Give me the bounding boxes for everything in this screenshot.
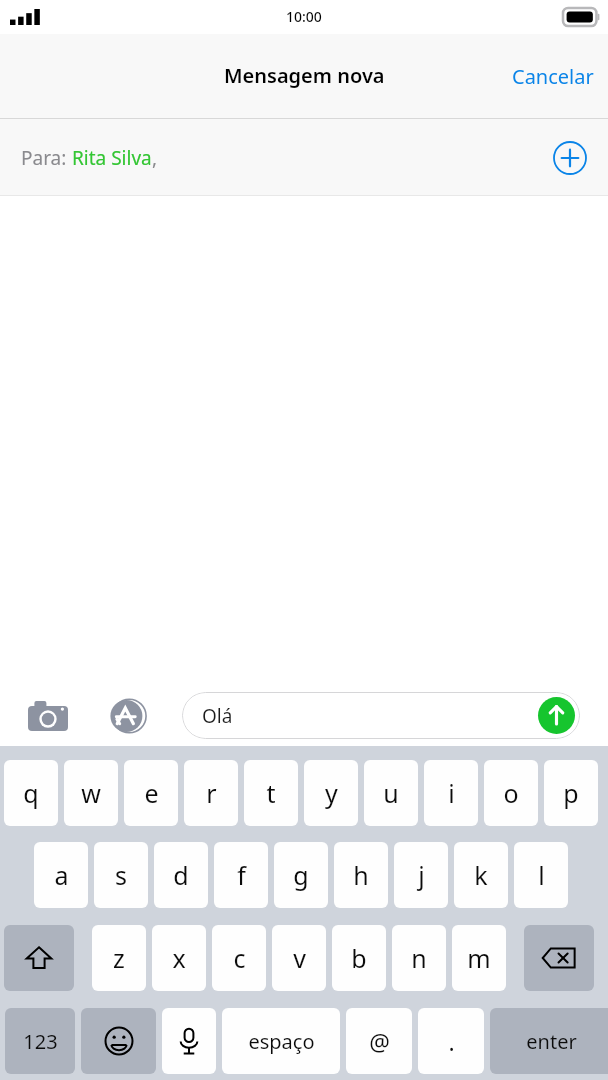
- button[interactable]: j: [394, 842, 448, 908]
- button[interactable]: f: [214, 842, 268, 908]
- staticText: j: [418, 858, 425, 892]
- button[interactable]: x: [152, 925, 206, 991]
- button[interactable]: d: [154, 842, 208, 908]
- button[interactable]: c: [212, 925, 266, 991]
- staticText: i: [448, 776, 455, 810]
- staticText: u: [383, 776, 399, 810]
- button[interactable]: g: [274, 842, 328, 908]
- staticText: b: [351, 941, 367, 975]
- staticText: m: [467, 941, 491, 975]
- staticText: x: [172, 941, 186, 975]
- staticText: f: [237, 858, 246, 892]
- staticText: z: [113, 941, 125, 975]
- staticText: o: [503, 776, 519, 810]
- button[interactable]: w: [64, 760, 118, 826]
- staticText: w: [81, 776, 101, 810]
- staticText: q: [23, 776, 39, 810]
- button[interactable]: espaço: [222, 1008, 340, 1074]
- button[interactable]: enter: [490, 1008, 608, 1074]
- button[interactable]: e: [124, 760, 178, 826]
- button[interactable]: p: [544, 760, 598, 826]
- button[interactable]: 123: [5, 1008, 75, 1074]
- staticText: 10:00: [286, 7, 322, 26]
- button[interactable]: n: [392, 925, 446, 991]
- staticText: d: [173, 858, 189, 892]
- staticText: Para:: [21, 145, 72, 171]
- staticText: c: [233, 941, 246, 975]
- button[interactable]: l: [514, 842, 568, 908]
- button[interactable]: b: [332, 925, 386, 991]
- button[interactable]: i: [424, 760, 478, 826]
- staticText: enter: [526, 1028, 577, 1055]
- staticText: y: [325, 776, 338, 810]
- button[interactable]: .: [418, 1008, 484, 1074]
- staticText: a: [54, 858, 69, 892]
- staticText: t: [266, 776, 276, 810]
- staticText: Mensagem nova: [224, 62, 385, 89]
- staticText: e: [144, 776, 159, 810]
- button[interactable]: y: [304, 760, 358, 826]
- staticText: espaço: [248, 1028, 315, 1055]
- button[interactable]: u: [364, 760, 418, 826]
- button[interactable]: Para:: [0, 119, 608, 196]
- button[interactable]: a: [34, 842, 88, 908]
- button[interactable]: k: [454, 842, 508, 908]
- button[interactable]: h: [334, 842, 388, 908]
- staticText: Cancelar: [512, 63, 594, 90]
- button[interactable]: App Store: [104, 692, 152, 740]
- button[interactable]: r: [184, 760, 238, 826]
- staticText: k: [474, 858, 488, 892]
- staticText: s: [115, 858, 127, 892]
- staticText: l: [538, 858, 545, 892]
- button[interactable]: Camera: [24, 692, 72, 740]
- button[interactable]: v: [272, 925, 326, 991]
- button[interactable]: Dictate: [162, 1008, 216, 1074]
- button[interactable]: Cancelar: [498, 53, 608, 100]
- button[interactable]: o: [484, 760, 538, 826]
- staticText: v: [293, 941, 306, 975]
- button[interactable]: Send: [538, 697, 575, 734]
- staticText: ,: [152, 145, 158, 171]
- staticText: n: [411, 941, 427, 975]
- staticText: @: [369, 1026, 390, 1057]
- staticText: Olá: [202, 703, 233, 729]
- button[interactable]: m: [452, 925, 506, 991]
- staticText: r: [206, 776, 217, 810]
- staticText: p: [563, 776, 579, 810]
- button[interactable]: Backspace: [524, 925, 594, 991]
- button[interactable]: s: [94, 842, 148, 908]
- button[interactable]: @: [346, 1008, 412, 1074]
- button[interactable]: Add contact: [553, 141, 587, 175]
- staticText: 123: [23, 1028, 58, 1055]
- staticText: .: [448, 1026, 455, 1057]
- button[interactable]: Shift: [4, 925, 74, 991]
- button[interactable]: Emoji: [81, 1008, 156, 1074]
- staticText: Rita Silva: [72, 145, 152, 171]
- button[interactable]: Olá: [182, 692, 580, 739]
- staticText: g: [293, 858, 309, 892]
- button[interactable]: z: [92, 925, 146, 991]
- button[interactable]: q: [4, 760, 58, 826]
- button[interactable]: t: [244, 760, 298, 826]
- staticText: h: [353, 858, 369, 892]
